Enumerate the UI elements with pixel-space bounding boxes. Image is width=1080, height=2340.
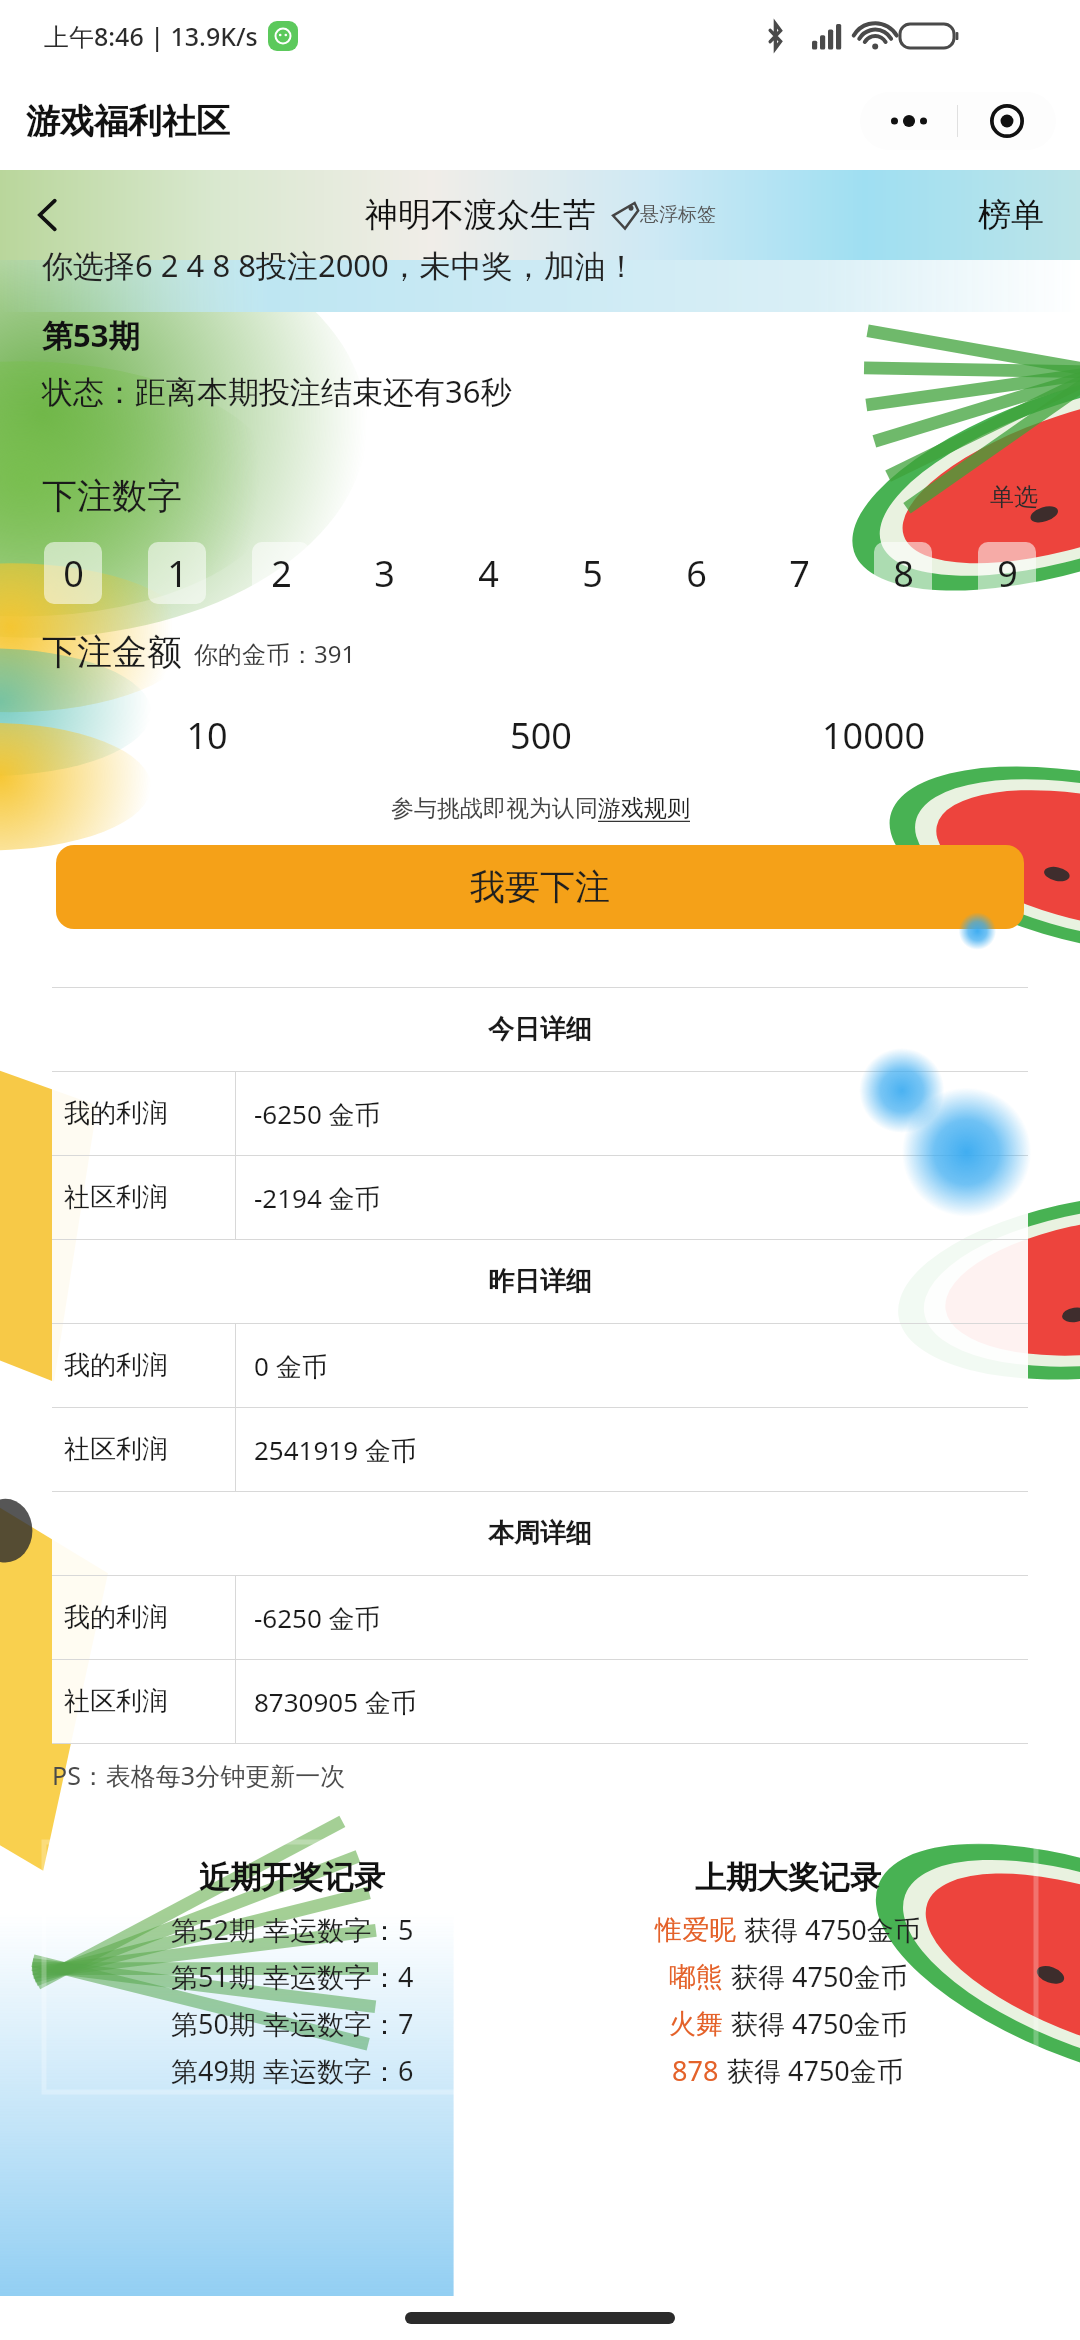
staticText: 获得 4750金币 [731, 1958, 908, 1995]
button[interactable]: 游戏规则 [598, 794, 690, 823]
button[interactable]: 榜单 [958, 170, 1064, 260]
button[interactable]: 6 [667, 542, 725, 604]
staticText: 第50期 幸运数字：7 [171, 2005, 414, 2042]
staticText: -6250 金币 [254, 1096, 381, 1132]
staticText: 第53期 [42, 314, 140, 356]
staticText: 3 [374, 549, 395, 598]
staticText: -6250 金币 [254, 1600, 381, 1636]
staticText: 7 [789, 549, 810, 598]
button[interactable]: 9 [978, 542, 1036, 604]
staticText: 4 [478, 549, 499, 598]
button[interactable]: 4 [459, 542, 517, 604]
staticText: 社区利润 [64, 1685, 168, 1718]
staticText: 下注金额 [42, 630, 182, 674]
staticText: 惟爱昵 [655, 1913, 736, 1947]
button[interactable]: 3 [355, 542, 413, 604]
staticText: 获得 4750金币 [744, 1911, 921, 1948]
staticText: 5 [582, 549, 603, 598]
staticText: 社区利润 [64, 1181, 168, 1214]
staticText: 第49期 幸运数字：6 [171, 2052, 414, 2089]
staticText: 我要下注 [470, 865, 610, 909]
button[interactable]: 2 [252, 542, 310, 604]
staticText: 获得 4750金币 [731, 2005, 908, 2042]
staticText: 0 [63, 549, 84, 598]
staticText: 游戏规则 [598, 794, 690, 823]
staticText: 状态：距离本期投注结束还有36秒 [42, 370, 512, 412]
staticText: 榜单 [978, 194, 1044, 236]
staticText: 昨日详细 [488, 1265, 592, 1298]
staticText: 第52期 幸运数字：5 [171, 1911, 414, 1948]
staticText: 8 [893, 549, 914, 598]
staticText: 你选择6 2 4 8 8投注2000，未中奖，加油！ [42, 244, 637, 286]
staticText: PS：表格每3分钟更新一次 [52, 1758, 346, 1792]
staticText: 500 [510, 711, 572, 760]
staticText: 近期开奖记录 [199, 1858, 385, 1897]
button[interactable]: 7 [770, 542, 828, 604]
staticText: 10 [186, 711, 228, 760]
staticText: 火舞 [669, 2007, 723, 2041]
staticText: 神明不渡众生苦 [365, 194, 596, 236]
staticText: 本周详细 [488, 1517, 592, 1550]
staticText: 今日详细 [488, 1013, 592, 1046]
staticText: 社区利润 [64, 1433, 168, 1466]
button[interactable]: 10000 [707, 704, 1040, 766]
button[interactable]: 10 [40, 704, 374, 766]
button[interactable]: 单选 [984, 476, 1044, 518]
staticText: 你的金币：391 [194, 637, 356, 670]
staticText: 8730905 金币 [254, 1684, 417, 1720]
staticText: 获得 4750金币 [727, 2052, 904, 2089]
staticText: 10000 [822, 711, 925, 760]
staticText: 单选 [990, 482, 1038, 512]
staticText: 第51期 幸运数字：4 [171, 1958, 414, 1995]
staticText: 我的利润 [64, 1601, 168, 1634]
staticText: 上午8:46 | 13.9K/s [44, 19, 258, 53]
staticText: 2541919 金币 [254, 1432, 417, 1468]
staticText: 6 [686, 549, 707, 598]
staticText: 上期大奖记录 [695, 1858, 881, 1897]
button[interactable]: 5 [563, 542, 621, 604]
staticText: 878 [672, 2052, 719, 2089]
button[interactable]: Back [0, 170, 96, 260]
staticText: 9 [997, 549, 1018, 598]
staticText: 我的利润 [64, 1349, 168, 1382]
button[interactable]: 1 [148, 542, 206, 604]
staticText: 参与挑战即视为认同 [391, 794, 598, 823]
button[interactable]: 0 [44, 542, 102, 604]
staticText: 悬浮标签 [640, 203, 716, 227]
button[interactable]: Close [958, 92, 1056, 150]
staticText: 游戏福利社区 [26, 100, 230, 143]
staticText: -2194 金币 [254, 1180, 381, 1216]
staticText: 嘟熊 [669, 1960, 723, 1994]
staticText: 2 [271, 549, 292, 598]
staticText: 下注数字 [42, 474, 182, 518]
button[interactable]: 我要下注 [56, 845, 1024, 929]
button[interactable]: 8 [874, 542, 932, 604]
button[interactable]: 500 [374, 704, 707, 766]
button[interactable]: More [860, 92, 957, 150]
staticText: 0 金币 [254, 1348, 328, 1384]
staticText: 我的利润 [64, 1097, 168, 1130]
staticText: 1 [167, 549, 188, 598]
